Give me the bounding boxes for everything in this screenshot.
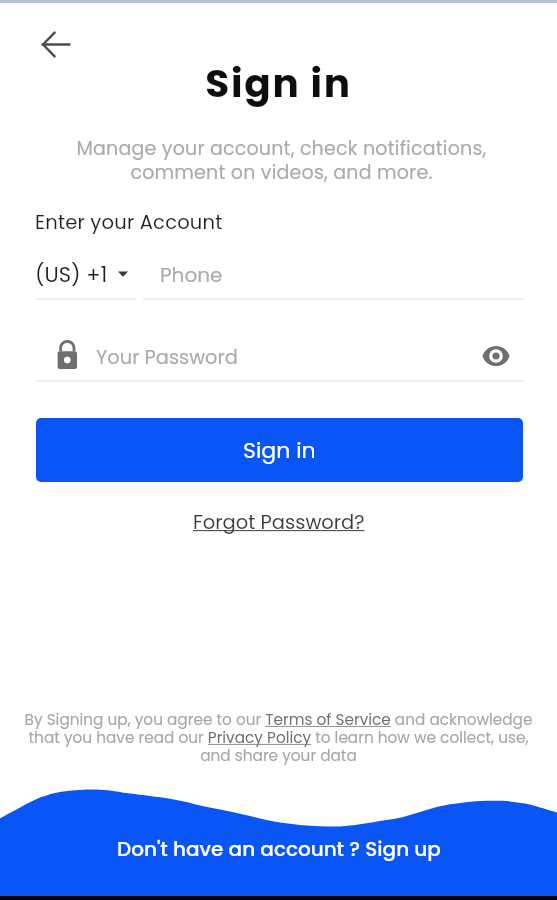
button[interactable]: Don't have an account ? Sign up <box>105 829 453 869</box>
button[interactable]: Forgot Password? <box>187 506 371 539</box>
staticText: Manage your account, check notifications… <box>3 135 557 186</box>
staticText: (US) +1 <box>35 260 108 289</box>
staticText: Sign in <box>243 435 316 466</box>
button[interactable]: Show password <box>477 337 515 375</box>
button[interactable]: (US) +1 <box>35 258 128 290</box>
staticText: Enter your Account <box>35 209 223 236</box>
button[interactable]: Back <box>31 20 79 68</box>
staticText: Sign in <box>0 56 557 111</box>
staticText: Your Password <box>96 344 238 371</box>
staticText: Don't have an account ? Sign up <box>117 835 441 863</box>
staticText: Phone <box>160 261 223 289</box>
staticText: By Signing up, you agree to our Terms of… <box>0 709 557 767</box>
button[interactable]: Sign in <box>36 418 523 482</box>
